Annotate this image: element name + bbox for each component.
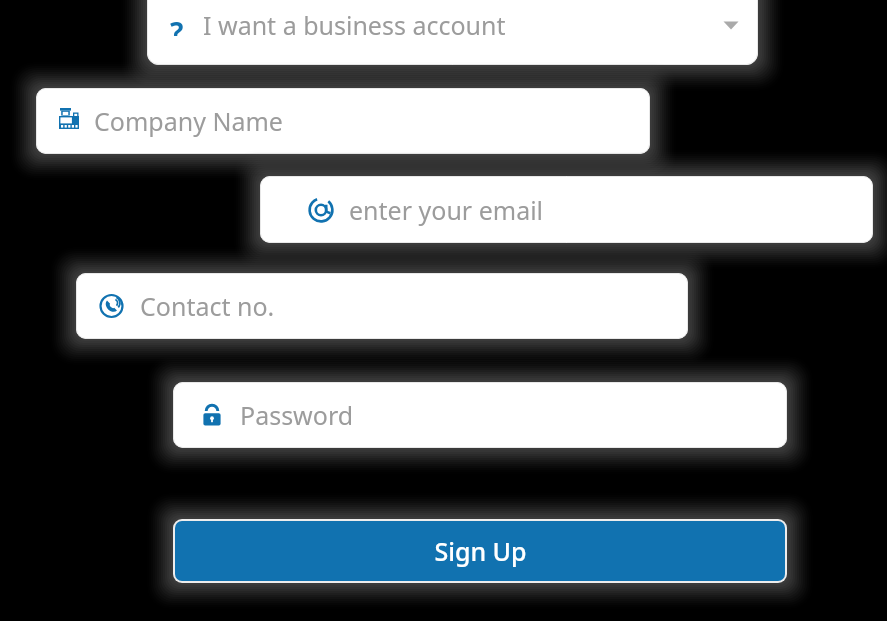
staticText: Contact no. [140, 289, 275, 323]
button[interactable]: Company Name [36, 88, 650, 154]
button[interactable]: enter your email [260, 176, 873, 243]
staticText: Sign Up [434, 534, 527, 568]
button[interactable]: Sign Up [175, 521, 785, 581]
button[interactable]: Password [173, 382, 787, 448]
staticText: I want a business account [203, 8, 506, 42]
other: Open dropdown [720, 14, 742, 36]
staticText: ? [170, 13, 184, 37]
staticText: Company Name [94, 104, 283, 138]
staticText: Password [240, 398, 354, 432]
staticText: enter your email [349, 193, 544, 227]
button[interactable]: ? [147, 0, 758, 65]
button[interactable]: Contact no. [76, 273, 688, 339]
